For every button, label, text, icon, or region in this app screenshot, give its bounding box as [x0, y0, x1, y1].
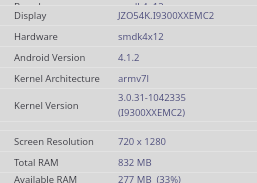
staticText: Kernel Architecture	[14, 72, 100, 85]
staticText: (I9300XXEMC2)	[118, 106, 186, 119]
button[interactable]: Screen Resolution	[0, 131, 257, 151]
button[interactable]: Kernel Version	[0, 89, 257, 121]
button[interactable]: Board	[0, 0, 257, 5]
staticText: armv7l	[118, 72, 149, 85]
button[interactable]: Total RAM	[0, 152, 257, 172]
button[interactable]: Android Version	[0, 47, 257, 67]
button[interactable]: Hardware	[0, 26, 257, 46]
staticText: JZO54K.I9300XXEMC2	[118, 9, 215, 22]
staticText: 720 x 1280	[118, 135, 167, 148]
staticText: Android Version	[14, 51, 86, 64]
staticText: 277 MB (33%)	[118, 173, 181, 183]
button[interactable]: Kernel Architecture	[0, 68, 257, 88]
staticText: Kernel Version	[14, 99, 79, 112]
staticText: 4.1.2	[118, 51, 140, 64]
staticText: Total RAM	[14, 156, 59, 169]
staticText: smdk4x12	[118, 30, 164, 43]
staticText: smdk4x12	[118, 0, 164, 5]
staticText: Board	[14, 0, 41, 5]
button[interactable]: Available RAM	[0, 173, 257, 183]
staticText: 832 MB	[118, 156, 152, 169]
staticText: Screen Resolution	[14, 135, 94, 148]
staticText: 3.0.31-1042335	[118, 91, 186, 104]
staticText: Hardware	[14, 30, 58, 43]
button[interactable]: Display	[0, 6, 257, 25]
staticText: Available RAM	[14, 173, 78, 183]
staticText: Display	[14, 9, 47, 22]
